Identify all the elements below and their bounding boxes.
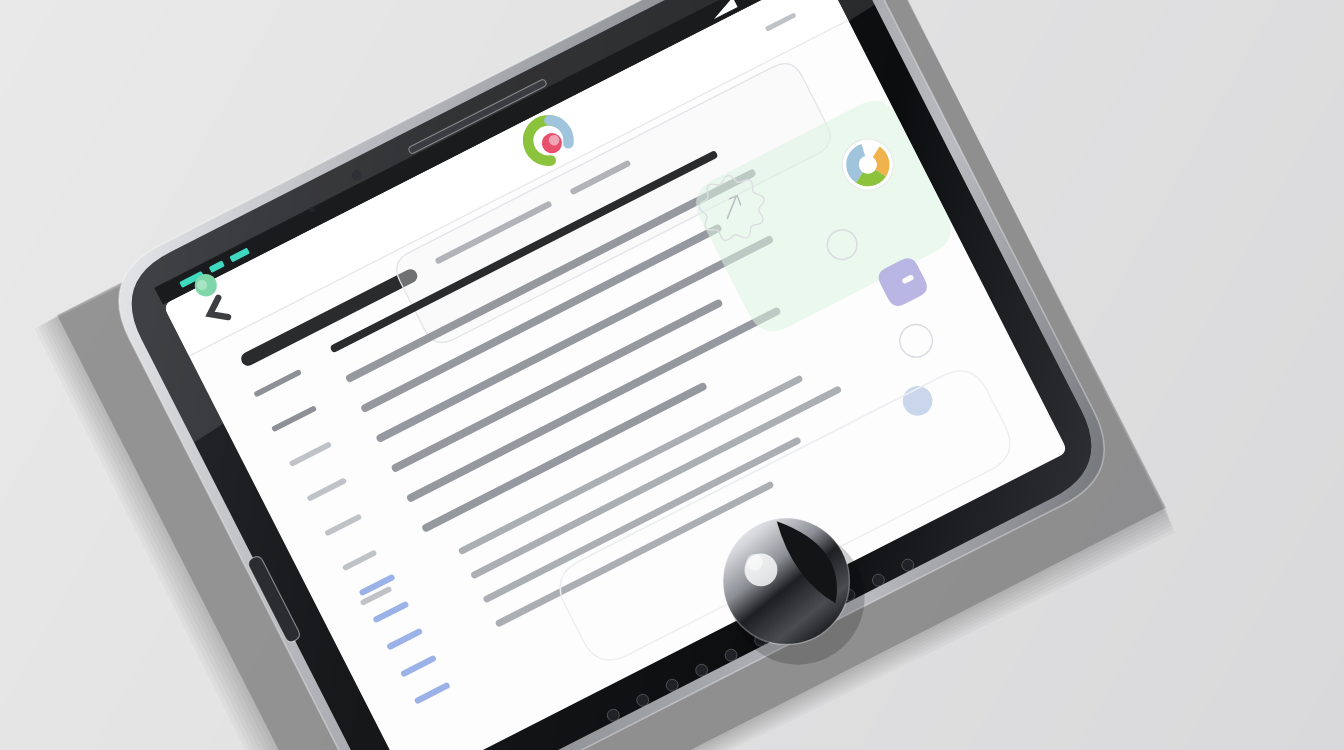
button[interactable]: Smartphone product photo: [0, 0, 1344, 750]
